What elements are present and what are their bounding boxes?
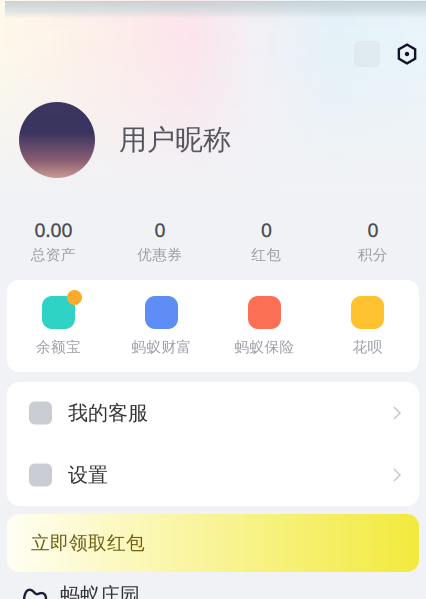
staticText: 0 (261, 216, 272, 243)
staticText: 积分 (358, 246, 388, 264)
staticText: 红包 (251, 246, 281, 264)
button[interactable]: 蚂蚁财富 (110, 296, 213, 356)
staticText: 花呗 (352, 338, 382, 356)
staticText: 我的客服 (68, 401, 148, 425)
button[interactable]: 扫一扫 (347, 34, 387, 74)
button[interactable]: 立即领取红包 (0, 514, 426, 572)
button[interactable]: 蚂蚁庄园 (0, 572, 426, 599)
staticText: 蚂蚁庄园 (60, 583, 140, 599)
staticText: 总资产 (31, 246, 76, 264)
button[interactable]: 0 (319, 216, 426, 264)
staticText: 优惠券 (137, 246, 182, 264)
staticText: 0 (367, 216, 378, 243)
button[interactable]: 0 (213, 216, 319, 264)
button[interactable]: 0.00 (0, 216, 106, 264)
button[interactable]: 0 (106, 216, 213, 264)
button[interactable]: 设置 (7, 444, 419, 506)
staticText: 立即领取红包 (31, 531, 145, 554)
button[interactable]: 蚂蚁保险 (213, 296, 316, 356)
staticText: 蚂蚁财富 (131, 338, 191, 356)
button[interactable]: 我的客服 (7, 382, 419, 444)
staticText: 0 (154, 216, 165, 243)
staticText: 蚂蚁保险 (234, 338, 294, 356)
button[interactable]: 设置 (387, 34, 426, 74)
button[interactable]: 花呗 (316, 296, 419, 356)
staticText: 0.00 (34, 216, 72, 243)
staticText: 用户昵称 (119, 123, 231, 157)
staticText: 余额宝 (36, 338, 81, 356)
button[interactable]: 余额宝 (7, 296, 110, 356)
staticText: 设置 (68, 463, 108, 487)
